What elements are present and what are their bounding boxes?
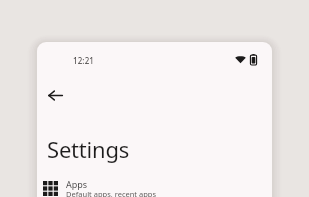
- staticText: Settings: [47, 134, 130, 164]
- other: Battery: [250, 54, 257, 65]
- other: Wi-Fi signal: [235, 55, 246, 64]
- staticText: 12:21: [73, 55, 94, 66]
- staticText: Apps: [66, 178, 88, 190]
- staticText: Default apps, recent apps: [66, 189, 157, 197]
- button[interactable]: Apps: [37, 172, 272, 197]
- button[interactable]: Navigate back: [40, 78, 72, 108]
